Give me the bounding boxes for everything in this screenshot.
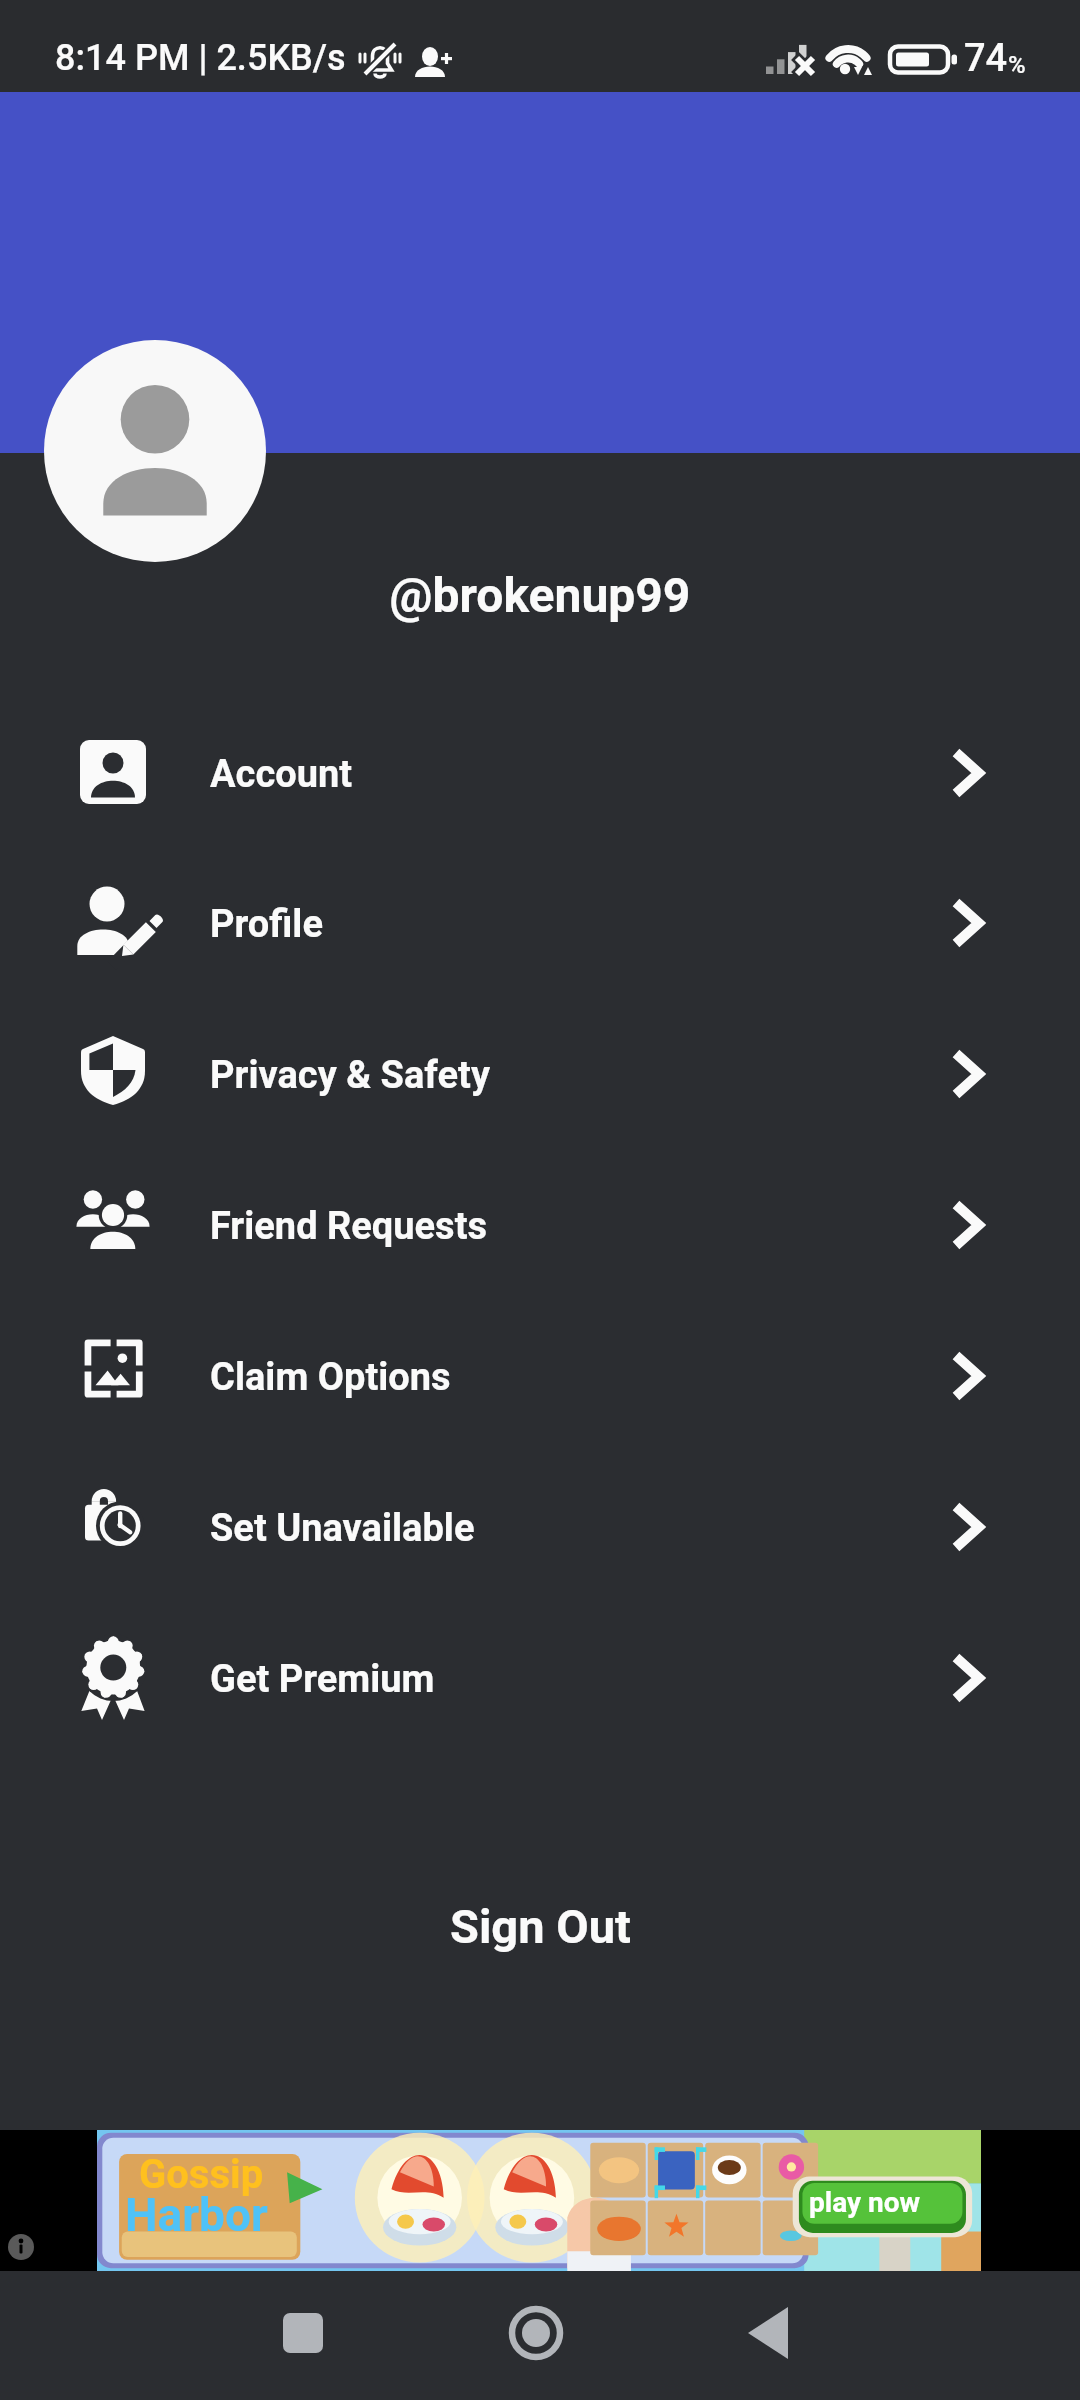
staticText: Account [210, 752, 353, 797]
button[interactable]: Friend Requests [0, 1151, 1080, 1302]
other: Ad information [8, 2234, 34, 2260]
staticText: Harbor [125, 2188, 268, 2242]
button[interactable]: Profile [0, 849, 1080, 1000]
button[interactable]: Profile picture [44, 340, 266, 562]
staticText: Gossip [139, 2151, 264, 2198]
staticText: 74 [964, 36, 1008, 81]
staticText: Profile [210, 902, 323, 947]
button[interactable]: Privacy & Safety [0, 1000, 1080, 1151]
staticText: Sign Out [450, 1899, 631, 1954]
staticText: 8:14 PM | 2.5KB/s [55, 37, 346, 79]
button[interactable]: Recent apps [243, 2271, 363, 2400]
button[interactable]: Set Unavailable [0, 1453, 1080, 1604]
button[interactable]: Sign Out [0, 1881, 1080, 1971]
button[interactable]: Get Premium [0, 1604, 1080, 1755]
staticText: @brokenup99 [0, 567, 1080, 623]
button[interactable]: Home [476, 2271, 596, 2400]
staticText: play now [809, 2186, 921, 2219]
staticText: Set Unavailable [210, 1506, 475, 1551]
staticText: Privacy & Safety [210, 1053, 490, 1098]
staticText: Friend Requests [210, 1204, 488, 1249]
button[interactable]: Account [0, 699, 1080, 850]
staticText: % [1008, 51, 1026, 79]
button[interactable]: Ad information [0, 2130, 1080, 2271]
button[interactable]: Claim Options [0, 1302, 1080, 1453]
button[interactable]: Back [708, 2271, 828, 2400]
staticText: Get Premium [210, 1657, 435, 1702]
staticText: Claim Options [210, 1355, 451, 1400]
